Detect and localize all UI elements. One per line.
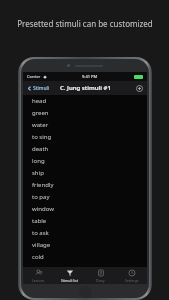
button[interactable]: village: [23, 239, 147, 251]
staticText: Stimuli: [33, 85, 50, 92]
button[interactable]: Lexicon: [23, 267, 54, 284]
staticText: green: [32, 109, 49, 117]
staticText: table: [32, 217, 47, 225]
staticText: to pay: [32, 193, 50, 201]
button[interactable]: head: [23, 95, 147, 107]
button[interactable]: death: [23, 143, 147, 155]
staticText: Stimuli list: [61, 278, 78, 283]
staticText: to sing: [32, 133, 52, 141]
staticText: long: [32, 157, 45, 165]
button[interactable]: table: [23, 215, 147, 227]
staticText: water: [32, 121, 49, 129]
staticText: Presetted stimuli can be customized: [17, 18, 153, 29]
staticText: Lexicon: [32, 278, 45, 283]
staticText: death: [32, 145, 49, 153]
button[interactable]: Stimuli: [23, 81, 54, 95]
staticText: ship: [32, 169, 44, 177]
button[interactable]: Stimuli list: [54, 267, 85, 284]
button[interactable]: to pay: [23, 191, 147, 203]
button[interactable]: Add stimulus: [132, 81, 147, 95]
staticText: cold: [32, 253, 44, 261]
button[interactable]: friendly: [23, 179, 147, 191]
button[interactable]: window: [23, 203, 147, 215]
staticText: Settings: [125, 278, 139, 283]
staticText: C. Jung stimuli #1: [60, 84, 111, 92]
button[interactable]: ship: [23, 167, 147, 179]
button[interactable]: water: [23, 119, 147, 131]
button[interactable]: green: [23, 107, 147, 119]
staticText: to ask: [32, 229, 49, 237]
staticText: friendly: [32, 181, 54, 189]
button[interactable]: Diary: [85, 267, 116, 284]
staticText: Carrier: [27, 74, 41, 79]
staticText: head: [32, 97, 47, 105]
button[interactable]: long: [23, 155, 147, 167]
button[interactable]: to sing: [23, 131, 147, 143]
staticText: 9:41 PM: [82, 74, 98, 79]
staticText: Diary: [96, 278, 105, 283]
staticText: window: [32, 205, 54, 213]
button[interactable]: cold: [23, 251, 147, 263]
button[interactable]: Settings: [116, 267, 147, 284]
staticText: village: [32, 241, 51, 249]
button[interactable]: to ask: [23, 227, 147, 239]
